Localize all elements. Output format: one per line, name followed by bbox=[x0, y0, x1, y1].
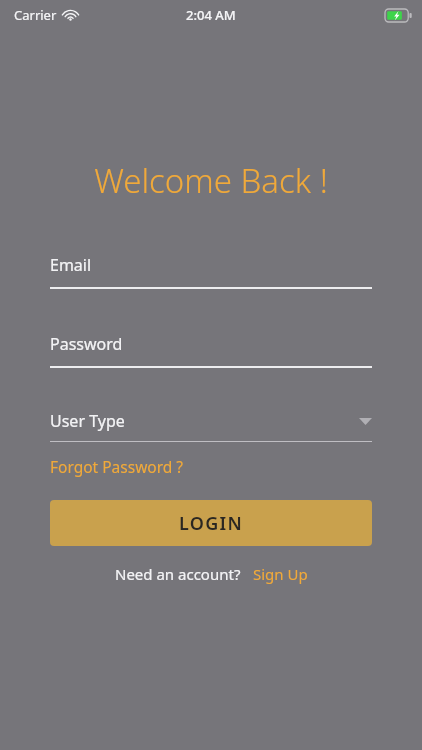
staticText: 2:04 AM bbox=[186, 6, 236, 24]
staticText: LOGIN bbox=[179, 511, 244, 536]
staticText: User Type bbox=[50, 410, 125, 432]
staticText: Carrier bbox=[14, 6, 57, 24]
button[interactable]: Sign Up bbox=[253, 564, 308, 584]
button[interactable]: LOGIN bbox=[50, 500, 372, 546]
button[interactable]: User Type bbox=[50, 410, 372, 432]
button[interactable]: Forgot Password ? bbox=[50, 456, 184, 477]
staticText: Forgot Password ? bbox=[50, 456, 184, 477]
staticText: Need an account? bbox=[115, 564, 241, 584]
staticText: Email bbox=[50, 254, 92, 276]
staticText: Password bbox=[50, 333, 123, 355]
staticText: Sign Up bbox=[253, 564, 308, 584]
staticText: Welcome Back ! bbox=[0, 158, 422, 203]
other: Select user type bbox=[359, 418, 372, 425]
